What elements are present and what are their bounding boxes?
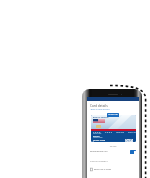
staticText: CARD MANAGEMENT <box>90 160 108 162</box>
button[interactable]: Enable/disable card <box>87 149 139 154</box>
staticText: 4000 1234 5678 9010 <box>93 131 136 134</box>
staticText: Report lost or stolen <box>94 168 112 170</box>
staticText: Card details <box>90 104 108 108</box>
button[interactable]: Report lost or stolen <box>87 165 139 173</box>
staticText: VISA <box>125 138 134 142</box>
button[interactable]: MANAGE CARD <box>107 113 119 117</box>
staticText: ‹ Back to card services <box>90 108 110 111</box>
staticText: VALID THRU <box>93 133 102 135</box>
staticText: CARDHOLDER <box>93 137 103 139</box>
button[interactable]: ‹ Back to card services <box>90 108 110 111</box>
staticText: JOHN DOE <box>93 139 106 142</box>
staticText: Bank of America <box>93 116 109 119</box>
staticText: Tap card <box>87 145 139 147</box>
staticText: Enable/disable card <box>90 150 108 153</box>
staticText: MANAGE CARD <box>108 114 118 116</box>
staticText: 06/26 <box>93 135 100 138</box>
